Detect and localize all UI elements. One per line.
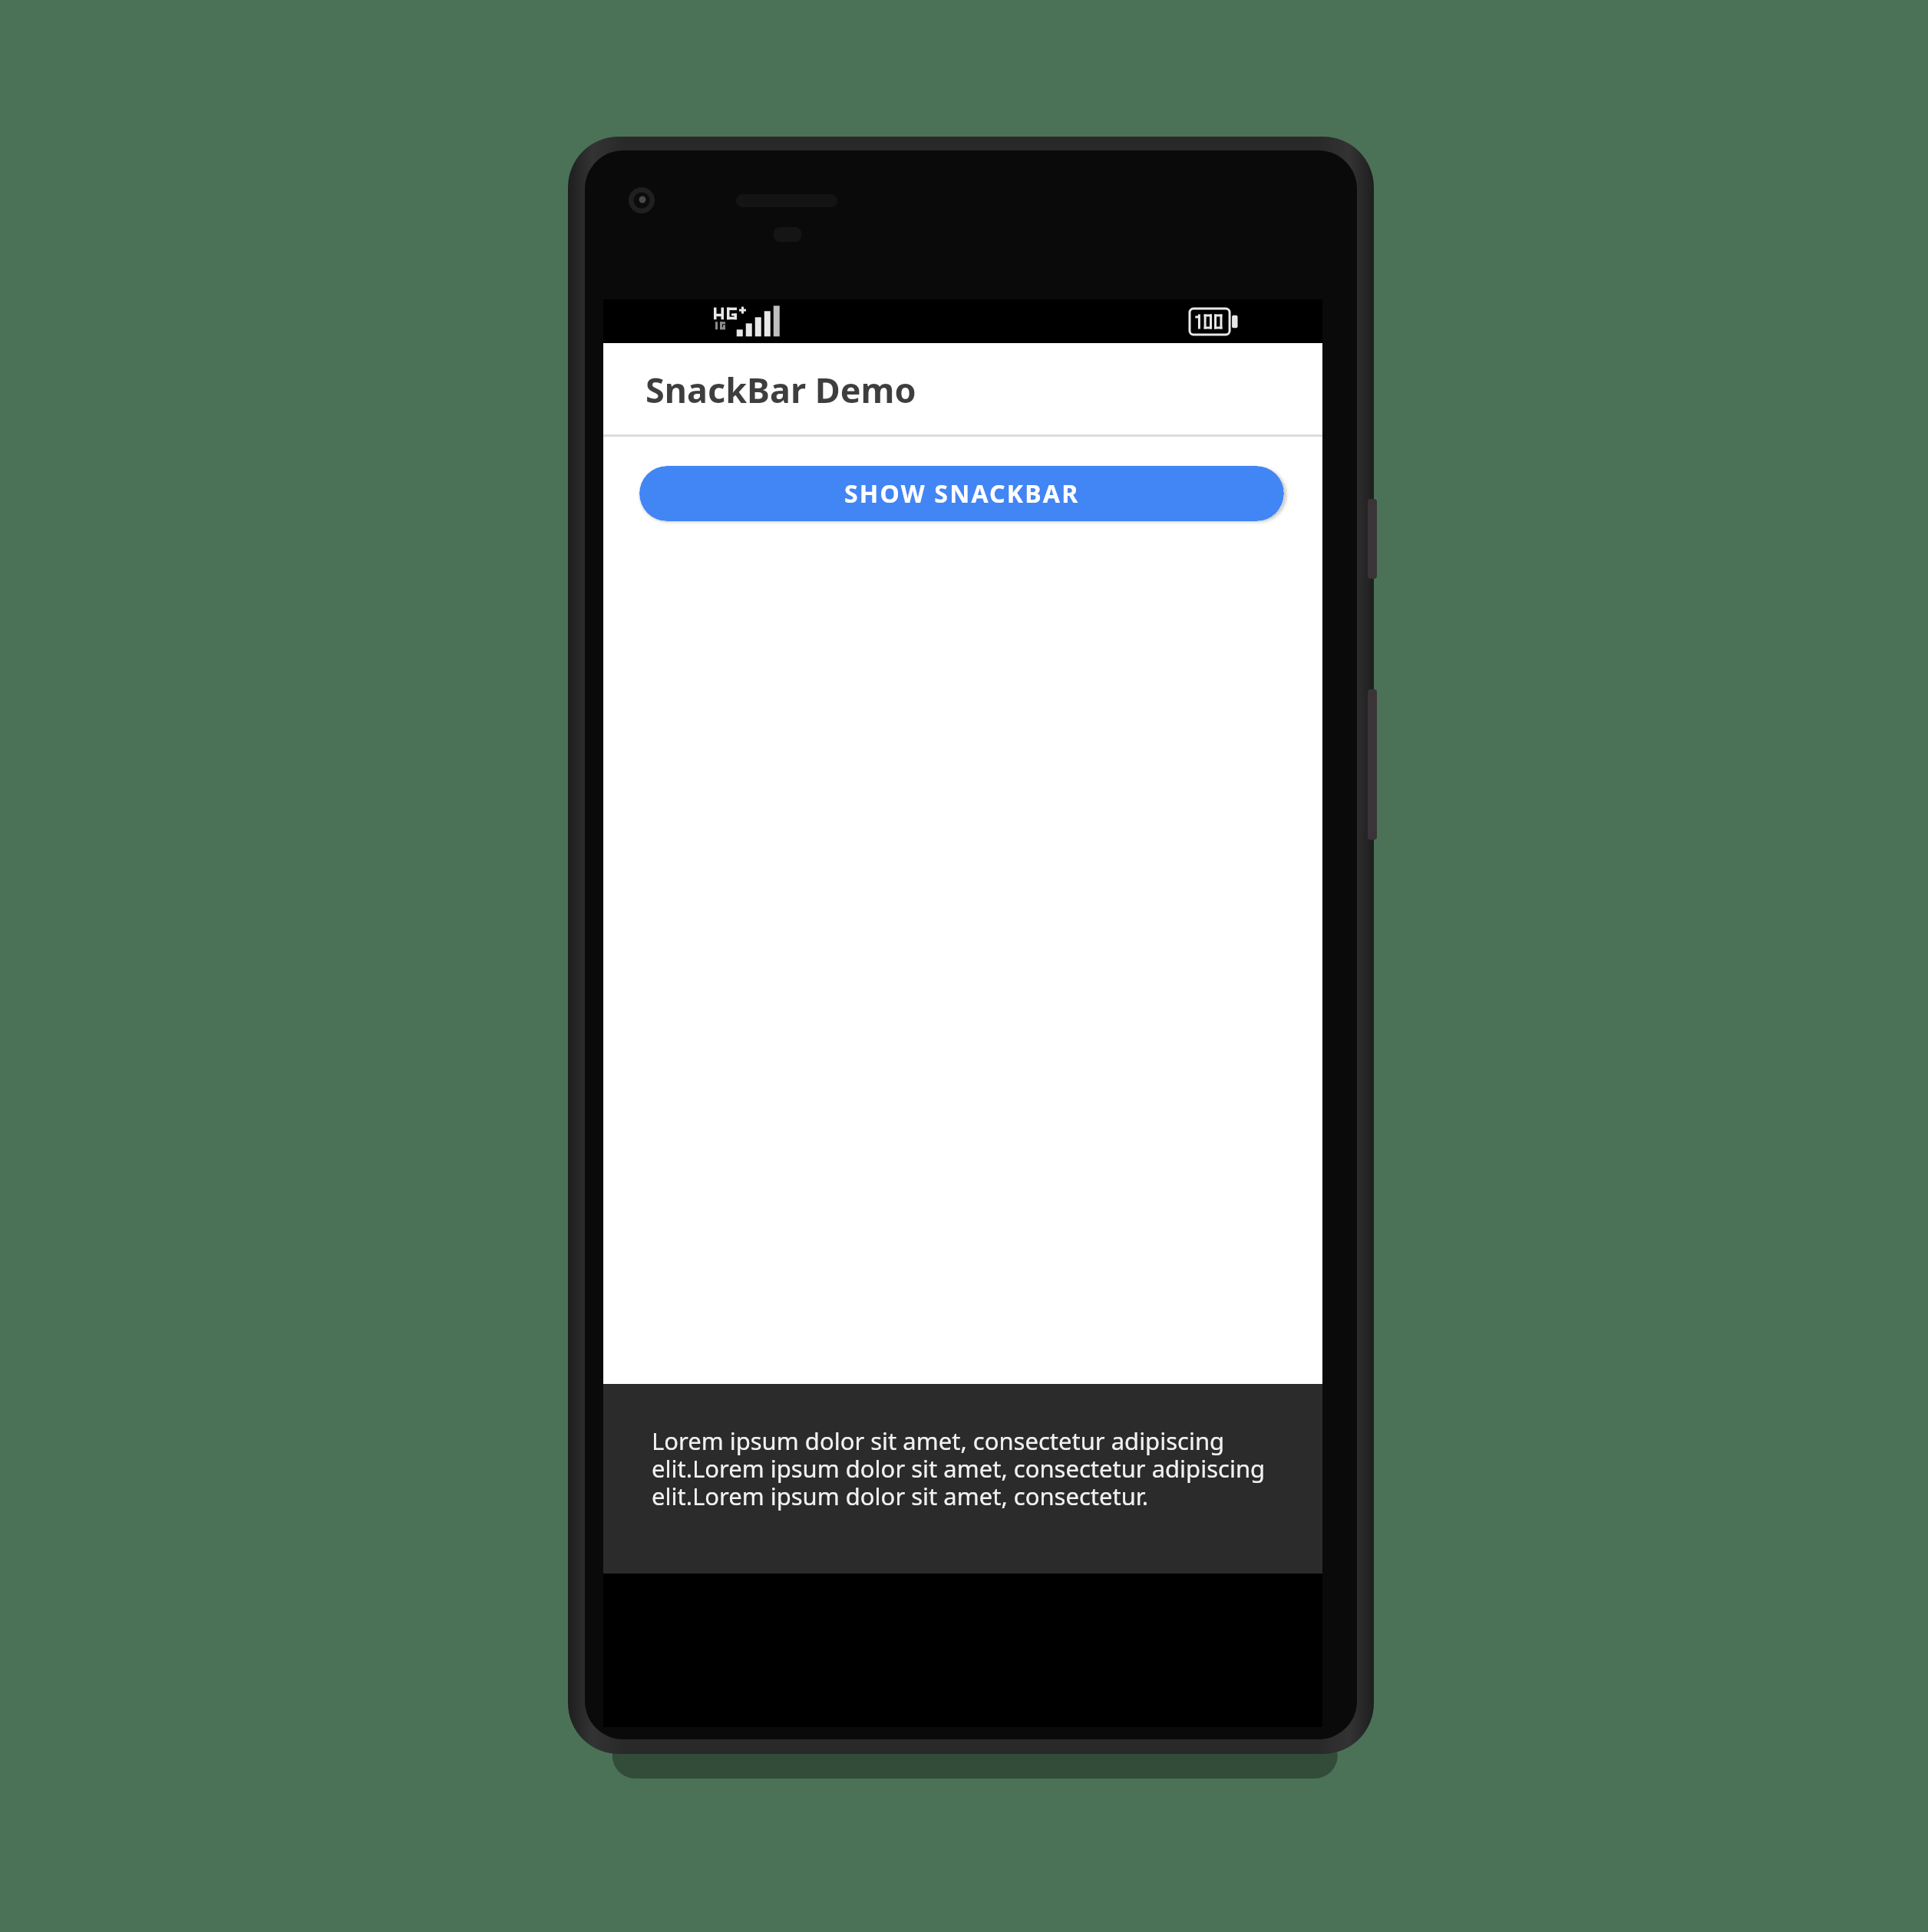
staticText: SHOW SNACKBAR: [844, 477, 1080, 510]
other: Volume: [1368, 689, 1377, 840]
button[interactable]: Lorem ipsum dolor sit amet, consectetur …: [603, 1384, 1322, 1574]
staticText: SnackBar Demo: [645, 366, 916, 413]
button[interactable]: SHOW SNACKBAR: [639, 466, 1284, 521]
other: Power: [1368, 499, 1377, 579]
staticText: Lorem ipsum dolor sit amet, consectetur …: [652, 1425, 1266, 1512]
